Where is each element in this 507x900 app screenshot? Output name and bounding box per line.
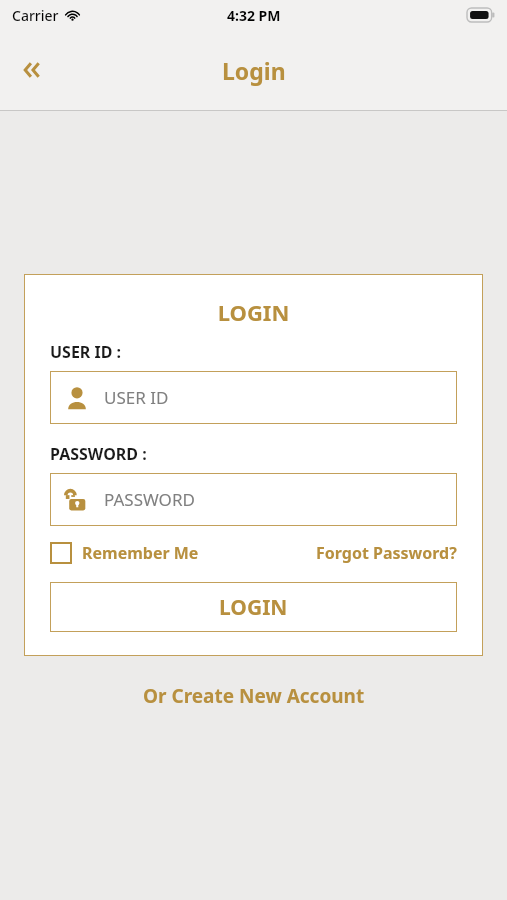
staticText: Remember Me: [82, 542, 199, 564]
button[interactable]: Or Create New Account: [0, 683, 507, 709]
staticText: 4:32 PM: [227, 6, 281, 25]
staticText: PASSWORD: [104, 488, 195, 511]
button[interactable]: Back: [10, 46, 58, 94]
button[interactable]: Forgot Password?: [316, 542, 457, 564]
button[interactable]: PASSWORD: [50, 473, 457, 526]
button[interactable]: USER ID: [50, 371, 457, 424]
staticText: Login: [222, 55, 286, 86]
button[interactable]: LOGIN: [50, 582, 457, 632]
staticText: Or Create New Account: [143, 683, 365, 709]
staticText: PASSWORD :: [50, 443, 147, 465]
staticText: Carrier: [12, 6, 59, 25]
staticText: USER ID: [104, 386, 169, 409]
staticText: LOGIN: [50, 297, 457, 327]
staticText: USER ID :: [50, 341, 122, 363]
staticText: Forgot Password?: [316, 542, 457, 564]
staticText: LOGIN: [219, 593, 288, 622]
button[interactable]: Remember Me: [50, 542, 199, 564]
